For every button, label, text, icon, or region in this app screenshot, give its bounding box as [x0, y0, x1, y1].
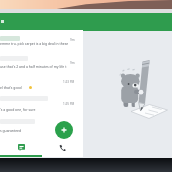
staticText: el that's good [0, 85, 22, 90]
button[interactable]: New chat [55, 121, 73, 139]
staticText: 9m [70, 61, 75, 65]
staticText: s guaranteed [0, 128, 22, 133]
staticText: 's a good one, for sure [0, 107, 36, 112]
staticText: emme tru. pick carpet is a big deal in t… [0, 41, 69, 46]
staticText: 1:25 PM [63, 102, 75, 106]
staticText: 9m [70, 38, 75, 42]
button[interactable]: Chats [0, 141, 42, 157]
staticText: 1:23 PM [63, 80, 75, 84]
button[interactable]: Back [0, 13, 172, 31]
button[interactable]: Calls [42, 141, 83, 157]
staticText: use that's 2 and a half minutes of my li… [0, 64, 67, 69]
